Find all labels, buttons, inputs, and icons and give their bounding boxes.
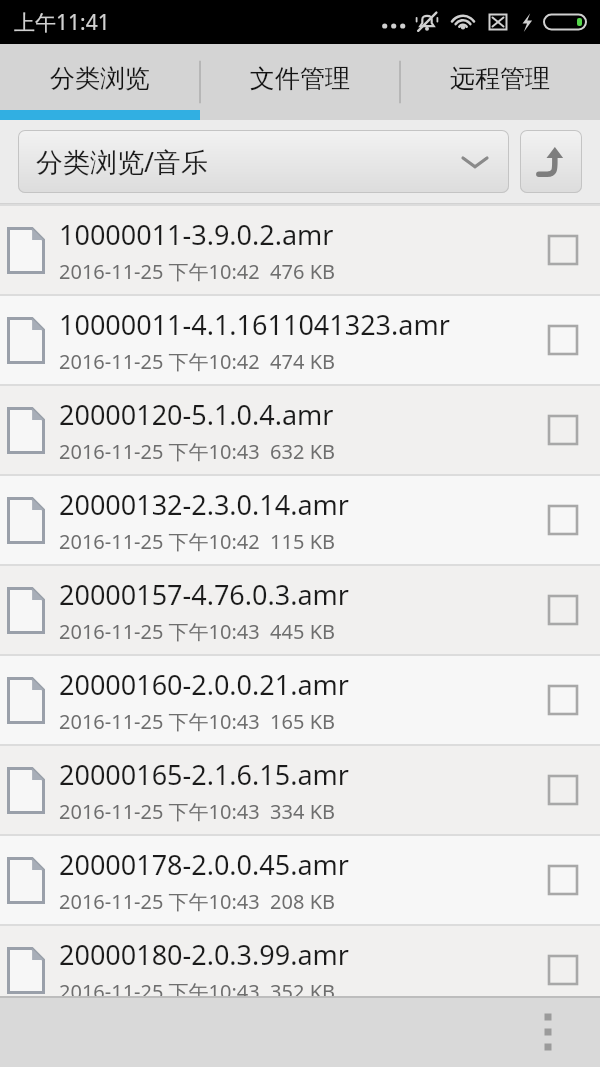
button[interactable]: 20000165-2.1.6.15.amr (0, 745, 600, 835)
staticText: 20000180-2.0.3.99.amr (59, 936, 349, 973)
staticText: 2016-11-25 下午10:42 476 KB (59, 258, 336, 285)
button[interactable]: 远程管理 (400, 44, 600, 120)
button[interactable]: 20000178-2.0.0.45.amr (0, 835, 600, 925)
button[interactable]: More options (522, 1006, 574, 1058)
button[interactable]: 分类浏览/音乐 (18, 130, 509, 193)
staticText: 10000011-3.9.0.2.amr (59, 216, 334, 253)
button[interactable]: 20000160-2.0.0.21.amr (0, 655, 600, 745)
staticText: 2016-11-25 下午10:43 165 KB (59, 708, 336, 735)
button[interactable]: 20000120-5.1.0.4.amr (0, 385, 600, 475)
button[interactable]: 10000011-3.9.0.2.amr (0, 205, 600, 295)
button[interactable]: Select 20000132-2.3.0.14.amr (540, 497, 586, 543)
staticText: 2016-11-25 下午10:43 445 KB (59, 618, 336, 645)
staticText: 10000011-4.1.1611041323.amr (59, 306, 450, 343)
button[interactable]: Select 20000165-2.1.6.15.amr (540, 767, 586, 813)
staticText: 20000160-2.0.0.21.amr (59, 666, 349, 703)
button[interactable]: Select 20000160-2.0.0.21.amr (540, 677, 586, 723)
staticText: 2016-11-25 下午10:43 632 KB (59, 438, 336, 465)
button[interactable]: 分类浏览 (0, 44, 200, 120)
button[interactable]: 10000011-4.1.1611041323.amr (0, 295, 600, 385)
staticText: 20000120-5.1.0.4.amr (59, 396, 334, 433)
button[interactable]: Select 10000011-3.9.0.2.amr (540, 227, 586, 273)
button[interactable]: Select 10000011-4.1.1611041323.amr (540, 317, 586, 363)
button[interactable]: 文件管理 (200, 44, 400, 120)
staticText: 2016-11-25 下午10:42 474 KB (59, 348, 336, 375)
staticText: 2016-11-25 下午10:43 352 KB (59, 978, 336, 1005)
staticText: 2016-11-25 下午10:43 208 KB (59, 888, 336, 915)
button[interactable]: 20000132-2.3.0.14.amr (0, 475, 600, 565)
button[interactable]: Select 20000180-2.0.3.99.amr (540, 947, 586, 993)
button[interactable]: Select 20000120-5.1.0.4.amr (540, 407, 586, 453)
staticText: 2016-11-25 下午10:42 115 KB (59, 528, 336, 555)
staticText: 远程管理 (450, 63, 550, 94)
staticText: 20000165-2.1.6.15.amr (59, 756, 349, 793)
staticText: 文件管理 (250, 63, 350, 94)
staticText: 2016-11-25 下午10:43 334 KB (59, 798, 336, 825)
staticText: 分类浏览/音乐 (36, 143, 209, 180)
button[interactable]: Up one level (520, 130, 582, 193)
staticText: 20000157-4.76.0.3.amr (59, 576, 349, 613)
staticText: 上午11:41 (14, 8, 110, 37)
staticText: 20000178-2.0.0.45.amr (59, 846, 349, 883)
button[interactable]: Select 20000157-4.76.0.3.amr (540, 587, 586, 633)
staticText: 分类浏览 (50, 63, 150, 94)
button[interactable]: Select 20000178-2.0.0.45.amr (540, 857, 586, 903)
staticText: 20000132-2.3.0.14.amr (59, 486, 349, 523)
button[interactable]: 20000157-4.76.0.3.amr (0, 565, 600, 655)
button[interactable]: 20000180-2.0.3.99.amr (0, 925, 600, 1015)
